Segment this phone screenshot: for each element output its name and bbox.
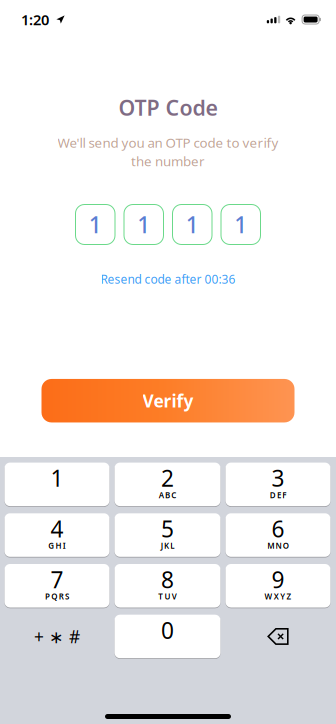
staticText: 3 — [271, 463, 284, 493]
staticText: WXYZ — [265, 591, 291, 602]
staticText: MNO — [267, 540, 289, 551]
staticText: Resend code after 00:36 — [100, 271, 235, 287]
staticText: 8 — [161, 564, 174, 594]
staticText: 1 — [137, 209, 150, 239]
button[interactable]: 9 — [225, 564, 330, 607]
button[interactable]: 6 — [225, 513, 330, 557]
button[interactable]: 7 — [4, 564, 109, 607]
button[interactable]: 1 — [172, 204, 212, 244]
staticText: We'll send you an OTP code to verify — [57, 134, 278, 151]
button[interactable]: 1 — [75, 204, 115, 244]
button[interactable]: 8 — [114, 564, 220, 607]
staticText: + ∗ # — [34, 625, 80, 648]
staticText: TUV — [158, 591, 177, 602]
staticText: OTP Code — [118, 93, 217, 122]
staticText: DEF — [270, 490, 286, 500]
button[interactable]: 1 — [4, 463, 109, 506]
button[interactable]: 1 — [124, 204, 163, 244]
staticText: ABC — [159, 490, 176, 500]
button[interactable]: Resend code after 00:36 — [100, 271, 235, 287]
staticText: 1:20 — [21, 10, 49, 29]
staticText: the number — [131, 152, 205, 170]
staticText: 1 — [89, 209, 102, 239]
staticText: PQRS — [45, 591, 69, 602]
staticText: GHI — [48, 540, 66, 551]
staticText: 2 — [161, 463, 174, 493]
button[interactable]: 4 — [4, 513, 109, 557]
button[interactable]: 0 — [114, 615, 220, 658]
button[interactable]: 1 — [221, 204, 260, 244]
staticText: 5 — [161, 514, 174, 544]
staticText: 4 — [50, 514, 63, 544]
staticText: 6 — [271, 514, 284, 544]
staticText: 1 — [50, 463, 63, 493]
staticText: 9 — [271, 564, 284, 594]
button[interactable]: 2 — [114, 463, 220, 506]
staticText: 1 — [234, 209, 247, 239]
staticText: 0 — [161, 615, 174, 645]
button[interactable]: Verify — [41, 379, 294, 422]
button[interactable]: + ∗ # — [4, 615, 109, 658]
staticText: 7 — [50, 564, 63, 594]
staticText: 1 — [186, 209, 199, 239]
staticText: JKL — [161, 540, 174, 551]
button[interactable]: 3 — [225, 463, 330, 506]
button[interactable]: 5 — [114, 513, 220, 557]
staticText: Verify — [142, 389, 193, 412]
button[interactable]: Delete — [225, 615, 330, 658]
